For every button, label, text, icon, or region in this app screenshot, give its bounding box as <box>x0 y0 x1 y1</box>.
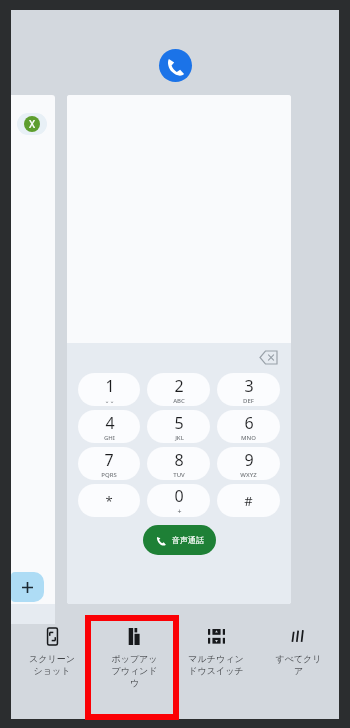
button[interactable]: Popup window <box>93 614 175 719</box>
button[interactable]: Screenshot <box>11 614 93 719</box>
button[interactable]: * <box>78 484 140 517</box>
staticText: 6 <box>244 412 254 434</box>
staticText: すべてクリ ア <box>275 653 322 677</box>
staticText: ポップアッ プウィンド ウ <box>111 653 158 689</box>
button[interactable]: 3 <box>217 373 280 406</box>
staticText: 7 <box>104 449 114 471</box>
button[interactable]: 0 <box>147 484 210 517</box>
staticText: 1 <box>105 375 115 397</box>
staticText: 2 <box>174 375 184 397</box>
staticText: * <box>105 492 113 510</box>
other: Screenshot <box>44 628 61 645</box>
staticText: 0 <box>174 485 184 507</box>
staticText: GHI <box>104 434 115 442</box>
staticText: 音声通話 <box>172 535 204 545</box>
button[interactable]: Multi window switch <box>175 614 257 719</box>
staticText: ABC <box>173 397 185 405</box>
staticText: TUV <box>173 471 185 479</box>
button[interactable]: 6 <box>217 410 280 443</box>
staticText: 4 <box>105 412 115 434</box>
button[interactable]: 8 <box>147 447 210 480</box>
button[interactable]: 4 <box>78 410 140 443</box>
staticText: JKL <box>175 434 184 442</box>
staticText: + <box>177 507 182 517</box>
button[interactable]: 2 <box>147 373 210 406</box>
button[interactable]: Phone app <box>159 49 192 82</box>
staticText: MNO <box>241 434 256 442</box>
button[interactable]: Add <box>11 572 44 602</box>
button[interactable]: Backspace <box>260 351 277 364</box>
other: Popup window <box>126 628 143 645</box>
button[interactable]: 音声通話 <box>143 525 216 555</box>
staticText: PQRS <box>101 471 117 479</box>
staticText: X <box>29 117 36 131</box>
other: Multi window switch <box>208 628 225 645</box>
button[interactable]: 9 <box>217 447 280 480</box>
button[interactable] <box>11 95 55 624</box>
button[interactable]: Clear all <box>257 614 339 719</box>
button[interactable]: 7 <box>78 447 140 480</box>
staticText: ⌄⌄ <box>104 397 115 404</box>
button[interactable]: 1 <box>78 373 140 406</box>
button[interactable]: 5 <box>147 410 210 443</box>
button[interactable]: # <box>217 484 280 517</box>
other: Clear all <box>290 628 307 645</box>
staticText: 5 <box>174 412 184 434</box>
staticText: 3 <box>244 375 254 397</box>
staticText: スクリーン ショット <box>29 653 75 677</box>
button[interactable]: Close <box>17 113 47 135</box>
staticText: 9 <box>244 449 254 471</box>
staticText: マルチウィン ドウスイッチ <box>188 653 244 677</box>
staticText: DEF <box>243 397 254 405</box>
staticText: # <box>244 492 253 510</box>
staticText: 8 <box>174 449 184 471</box>
staticText: WXYZ <box>240 471 257 479</box>
